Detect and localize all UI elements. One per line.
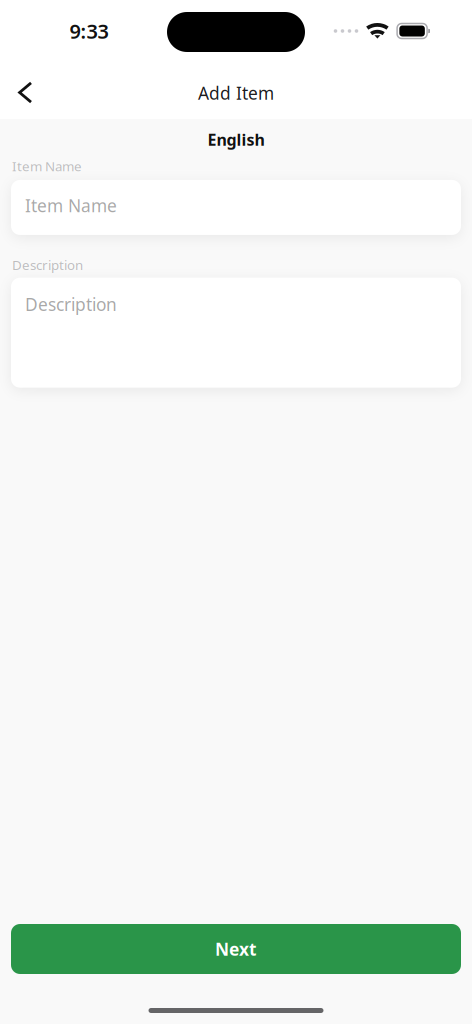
staticText: 9:33 xyxy=(69,18,108,44)
staticText: English xyxy=(207,129,264,150)
button[interactable]: Back xyxy=(0,63,47,117)
button[interactable]: Next xyxy=(11,924,461,974)
staticText: Add Item xyxy=(198,81,274,104)
staticText: Description xyxy=(12,256,83,274)
staticText: Next xyxy=(215,937,257,960)
staticText: Item Name xyxy=(12,157,82,175)
button[interactable]: Description xyxy=(11,278,461,388)
button[interactable]: Item Name xyxy=(11,180,461,235)
staticText: Item Name xyxy=(25,194,117,217)
staticText: Description xyxy=(25,293,117,316)
